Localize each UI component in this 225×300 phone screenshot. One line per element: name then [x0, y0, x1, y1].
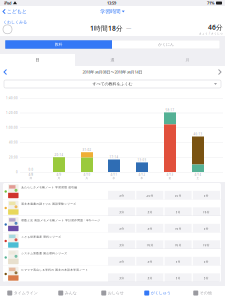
staticText: 木: [140, 176, 143, 180]
staticText: 46:13: [193, 132, 202, 136]
button[interactable]: ヒマラヤ高山しる学科の 国文の本語本学習ノート: [3, 265, 221, 282]
staticText: 71%: [207, 0, 215, 6]
staticText: 3分: [204, 276, 209, 280]
staticText: システム算数書 国公理科シリーズ: [21, 252, 67, 255]
staticText: みんな: [65, 290, 77, 295]
staticText: 3分: [119, 260, 124, 263]
staticText: 16分: [175, 243, 182, 247]
button[interactable]: 日: [0, 54, 75, 66]
button[interactable]: すべての教科をふくむ: [4, 80, 221, 88]
staticText: きょう / さくじつ: [199, 32, 223, 35]
staticText: あたらしさメモ帳ノート 学習習慣 成功編: [21, 186, 77, 189]
staticText: 40:00: [9, 141, 18, 144]
button[interactable]: タイムライン: [0, 286, 45, 300]
button[interactable]: こどもと: [0, 6, 30, 17]
button[interactable]: システム算数書 国公理科シリーズ: [3, 249, 221, 265]
button[interactable]: その他: [180, 286, 225, 300]
staticText: ヒマラヤ高山しる学科の 国文の本語本学習ノート: [21, 268, 88, 271]
button[interactable]: あたらしさメモ帳ノート 学習習慣 成功編: [3, 183, 221, 199]
staticText: 日: [35, 57, 39, 62]
staticText: 4/14: [194, 173, 201, 176]
staticText: 3分: [147, 210, 152, 214]
staticText: 理数と次 英語メモメモ帳ノート 学計習作問題 1年6ページ: [21, 218, 100, 222]
staticText: 月: [57, 176, 60, 180]
staticText: 4/9: [56, 173, 61, 176]
staticText: 20:14: [54, 153, 63, 157]
staticText: 月: [185, 57, 189, 62]
button[interactable]: みんな: [45, 286, 90, 300]
staticText: 土: [196, 176, 199, 180]
staticText: おしらせ: [108, 290, 124, 295]
staticText: 週: [110, 57, 114, 62]
staticText: こどもと: [7, 8, 27, 15]
staticText: 16分: [175, 227, 182, 230]
staticText: 4/13: [166, 173, 173, 176]
button[interactable]: 次の週: [214, 66, 225, 78]
staticText: 3分: [204, 260, 209, 263]
button[interactable]: 理数と次 英語メモメモ帳ノート 学計習作問題 1年6ページ: [3, 216, 221, 232]
button[interactable]: おしらせ: [90, 286, 135, 300]
staticText: 16分: [203, 210, 210, 214]
staticText: 金: [168, 176, 171, 180]
staticText: 4/8: [28, 173, 33, 176]
staticText: 0: [16, 170, 18, 174]
staticText: 教科: [54, 42, 62, 47]
button[interactable]: かくにん: [112, 40, 220, 49]
staticText: 20分: [175, 194, 182, 197]
staticText: がくしゅう: [151, 290, 171, 295]
staticText: iPad: [4, 0, 12, 6]
staticText: 3分: [147, 227, 152, 230]
button[interactable]: がくしゅう: [135, 286, 180, 300]
button[interactable]: 前の週: [0, 66, 10, 78]
staticText: 4/10: [83, 173, 90, 176]
staticText: 3分: [204, 194, 209, 197]
staticText: その他: [200, 290, 212, 295]
staticText: 46分: [208, 23, 223, 32]
staticText: 13:03: [137, 158, 146, 162]
button[interactable]: 週: [75, 54, 150, 66]
staticText: 3分: [204, 227, 209, 230]
staticText: 0:0: [28, 168, 33, 171]
staticText: 3分: [176, 276, 181, 280]
staticText: 漢文本遺書の謎ドリル 国語受験シリーズ: [21, 202, 76, 205]
staticText: 4/12: [138, 173, 145, 176]
staticText: 3分: [119, 194, 124, 197]
staticText: 火: [85, 176, 88, 180]
staticText: 20分: [146, 194, 153, 197]
staticText: 日: [29, 176, 32, 180]
staticText: —: [126, 25, 131, 32]
button[interactable]: 学習時間: [100, 6, 125, 17]
staticText: かくにん: [158, 42, 174, 47]
staticText: 2018年04月08日〜2018年04月14日: [82, 69, 142, 75]
button[interactable]: 漢文本遺書の謎ドリル 国語受験シリーズ: [3, 199, 221, 216]
staticText: 58:17: [165, 108, 174, 112]
staticText: すべての教科をふくむ: [92, 81, 132, 86]
staticText: 3分: [119, 210, 124, 214]
staticText: 学習時間: [100, 8, 120, 15]
staticText: 3分: [119, 243, 124, 247]
staticText: 20:00: [9, 156, 18, 159]
staticText: 水: [112, 176, 115, 180]
staticText: 13:59: [107, 0, 116, 6]
staticText: 16分: [146, 243, 153, 247]
staticText: 4/11: [110, 173, 117, 176]
staticText: こども世界遺産 理科シリーズ: [21, 235, 61, 238]
staticText: 3分: [176, 260, 181, 263]
button[interactable]: 教科: [5, 40, 112, 49]
staticText: 1時間18分: [90, 24, 123, 33]
button[interactable]: こども世界遺産 理科シリーズ: [3, 232, 221, 249]
staticText: タイムライン: [14, 290, 38, 295]
staticText: くわしくみる: [3, 20, 27, 25]
staticText: 3分: [147, 276, 152, 280]
staticText: 31:02: [82, 148, 91, 152]
staticText: 1:00:00: [6, 126, 18, 129]
staticText: 3分: [176, 210, 181, 214]
staticText: 3分: [119, 227, 124, 230]
staticText: 10分: [203, 243, 210, 247]
staticText: 3分: [147, 260, 152, 263]
staticText: 17:14: [109, 155, 118, 159]
staticText: 1:40:00: [6, 96, 18, 100]
staticText: 3分: [119, 276, 124, 280]
staticText: 1:20:00: [6, 111, 18, 115]
